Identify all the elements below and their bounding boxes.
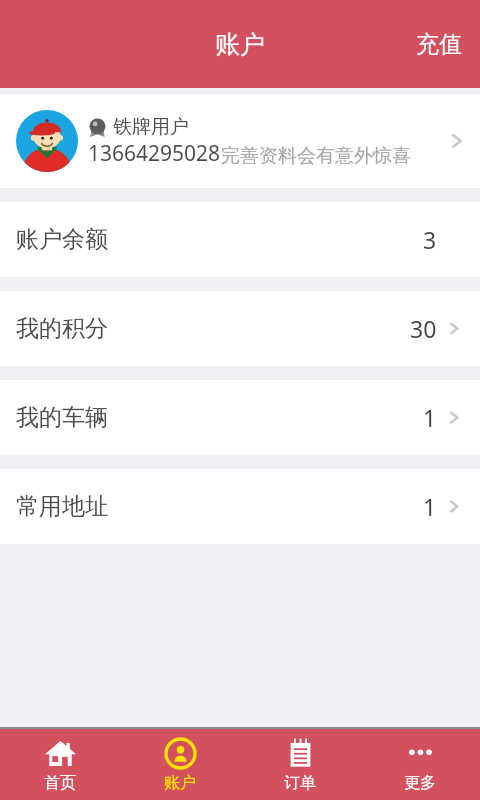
staticText: 30 — [410, 313, 437, 344]
button[interactable]: 账户余额 — [0, 202, 480, 277]
staticText: 铁牌用户 — [113, 115, 189, 139]
staticText: 首页 — [44, 773, 76, 793]
staticText: 账户余额 — [16, 225, 423, 254]
staticText: 更多 — [404, 773, 436, 793]
staticText: 充值 — [416, 30, 462, 59]
other: 账户 — [164, 737, 197, 770]
staticText: 1 — [423, 402, 437, 433]
staticText: 13664295028 — [88, 139, 221, 168]
staticText: 账户 — [164, 773, 196, 793]
other: 更多 — [404, 737, 437, 770]
staticText: 我的车辆 — [16, 403, 423, 432]
button[interactable]: 更多 — [360, 729, 480, 800]
staticText: 常用地址 — [16, 492, 423, 521]
button[interactable]: 充值 — [398, 0, 480, 88]
button[interactable]: 我的车辆 — [0, 380, 480, 455]
button[interactable]: 我的积分 — [0, 291, 480, 366]
button[interactable]: 首页 — [0, 729, 120, 800]
button[interactable]: 账户 — [120, 729, 240, 800]
staticText: 1 — [423, 491, 437, 522]
staticText: 订单 — [284, 773, 316, 793]
staticText: 我的积分 — [16, 314, 410, 343]
staticText: 完善资料会有意外惊喜 — [221, 144, 411, 168]
other: 首页 — [44, 737, 77, 770]
staticText: 3 — [423, 224, 437, 255]
other: 订单 — [284, 737, 317, 770]
button[interactable]: 订单 — [240, 729, 360, 800]
button[interactable]: 常用地址 — [0, 469, 480, 544]
staticText: 账户 — [215, 29, 265, 60]
button[interactable]: 铁牌用户 — [0, 94, 480, 188]
